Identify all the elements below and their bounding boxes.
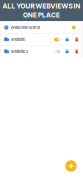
button[interactable]: Delete bbox=[75, 37, 81, 42]
staticText: Website bbox=[11, 37, 25, 42]
button[interactable]: WebView World bbox=[1, 22, 81, 33]
staticText: ALL YOUR WEBVIEWS IN bbox=[2, 2, 80, 10]
staticText: ONE PLACE bbox=[23, 11, 60, 19]
staticText: WebView World bbox=[11, 25, 40, 30]
button[interactable]: Delete bbox=[75, 49, 81, 54]
button[interactable]: Enable bbox=[54, 50, 60, 53]
button[interactable]: Lock bbox=[65, 37, 69, 42]
button[interactable]: Disable bbox=[54, 38, 60, 41]
button[interactable]: Website 2 bbox=[1, 46, 81, 57]
staticText: Website 2 bbox=[11, 49, 28, 54]
button[interactable]: Website bbox=[1, 34, 81, 45]
button[interactable]: Add webview bbox=[65, 160, 77, 172]
button[interactable]: Lock bbox=[65, 49, 69, 54]
